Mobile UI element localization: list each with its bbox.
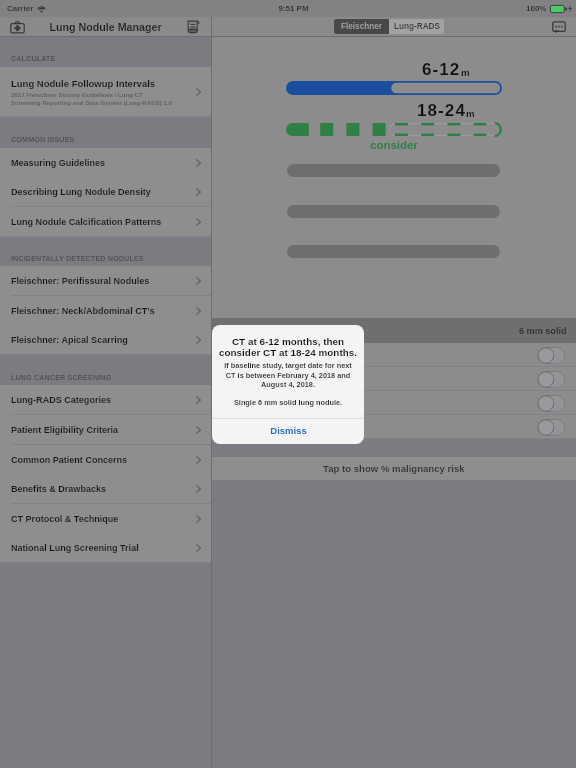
button[interactable]: National Lung Screening Trial (0, 533, 211, 563)
staticText: 100% (526, 4, 547, 13)
staticText: m (461, 67, 470, 78)
staticText: Lung Nodule Manager (49, 21, 162, 33)
button[interactable]: CT Protocol & Technique (0, 504, 211, 534)
staticText: CALCULATE (11, 54, 56, 62)
staticText: CT at 6-12 months, then consider CT at 1… (214, 336, 362, 358)
staticText: Patient Eligibility Criteria (11, 425, 119, 435)
staticText: Describing Lung Nodule Density (11, 187, 151, 197)
staticText: m (466, 108, 475, 119)
button[interactable] (212, 367, 576, 391)
staticText: Lung Nodule Followup Intervals (11, 78, 156, 89)
staticText: LUNG CANCER SCREENING (11, 373, 112, 381)
button[interactable]: Benefits & Drawbacks (0, 474, 211, 504)
button[interactable]: Notes (183, 17, 204, 36)
button[interactable]: Lung-RADS (389, 19, 444, 34)
staticText: Fleischner: Apical Scarring (11, 335, 128, 345)
staticText: 18-24 (417, 101, 466, 120)
button[interactable]: Dismiss (212, 419, 364, 444)
button[interactable]: Fleischner: Apical Scarring (0, 325, 211, 355)
staticText: 2017 Fleischner Society Guidelines / Lun… (11, 91, 172, 106)
staticText: National Lung Screening Trial (11, 543, 139, 553)
staticText: CT Protocol & Technique (11, 514, 119, 524)
staticText: Fleischner: Perifissural Nodules (11, 276, 150, 286)
button[interactable]: Fleischner: Perifissural Nodules (0, 266, 211, 296)
button[interactable]: Measuring Guidelines (0, 148, 211, 178)
button[interactable]: Patient Eligibility Criteria (0, 415, 211, 445)
staticText: 6-12 (422, 60, 461, 79)
staticText: 9:51 PM (278, 4, 309, 13)
staticText: 6 mm solid (519, 326, 567, 336)
staticText: Benefits & Drawbacks (11, 484, 107, 494)
button[interactable]: Describing Lung Nodule Density (0, 177, 211, 207)
button[interactable]: Medical kit (7, 17, 28, 36)
button[interactable]: Common Patient Concerns (0, 445, 211, 475)
button[interactable]: Comments (550, 18, 568, 36)
button[interactable]: Fleischner (334, 19, 389, 34)
button[interactable] (212, 343, 576, 367)
button[interactable]: Tap to show % malignancy risk (212, 457, 576, 480)
staticText: Lung-RADS Categories (11, 395, 112, 405)
button[interactable]: Lung Nodule Calcification Patterns (0, 207, 211, 237)
staticText: Carrier (7, 4, 34, 13)
staticText: If baseline study, target date for next … (214, 361, 362, 388)
button[interactable]: Lung Nodule Followup Intervals (0, 67, 211, 117)
staticText: Dismiss (270, 425, 307, 436)
staticText: Fleischner (341, 22, 382, 31)
staticText: Measuring Guidelines (11, 158, 106, 168)
staticText: consider (370, 139, 418, 152)
staticText: Lung-RADS (394, 22, 440, 31)
staticText: INCIDENTALLY DETECTED NODULES (11, 254, 144, 262)
staticText: COMMON ISSUES (11, 135, 75, 143)
staticText: Single 6 mm solid lung nodule. (214, 398, 362, 406)
button[interactable]: Lung-RADS Categories (0, 385, 211, 415)
button[interactable] (212, 415, 576, 439)
button[interactable]: Fleischner: Neck/Abdominal CT's (0, 296, 211, 326)
staticText: Tap to show % malignancy risk (323, 463, 465, 474)
staticText: Common Patient Concerns (11, 455, 128, 465)
staticText: Fleischner: Neck/Abdominal CT's (11, 306, 155, 316)
button[interactable] (212, 391, 576, 415)
staticText: Lung Nodule Calcification Patterns (11, 217, 162, 227)
